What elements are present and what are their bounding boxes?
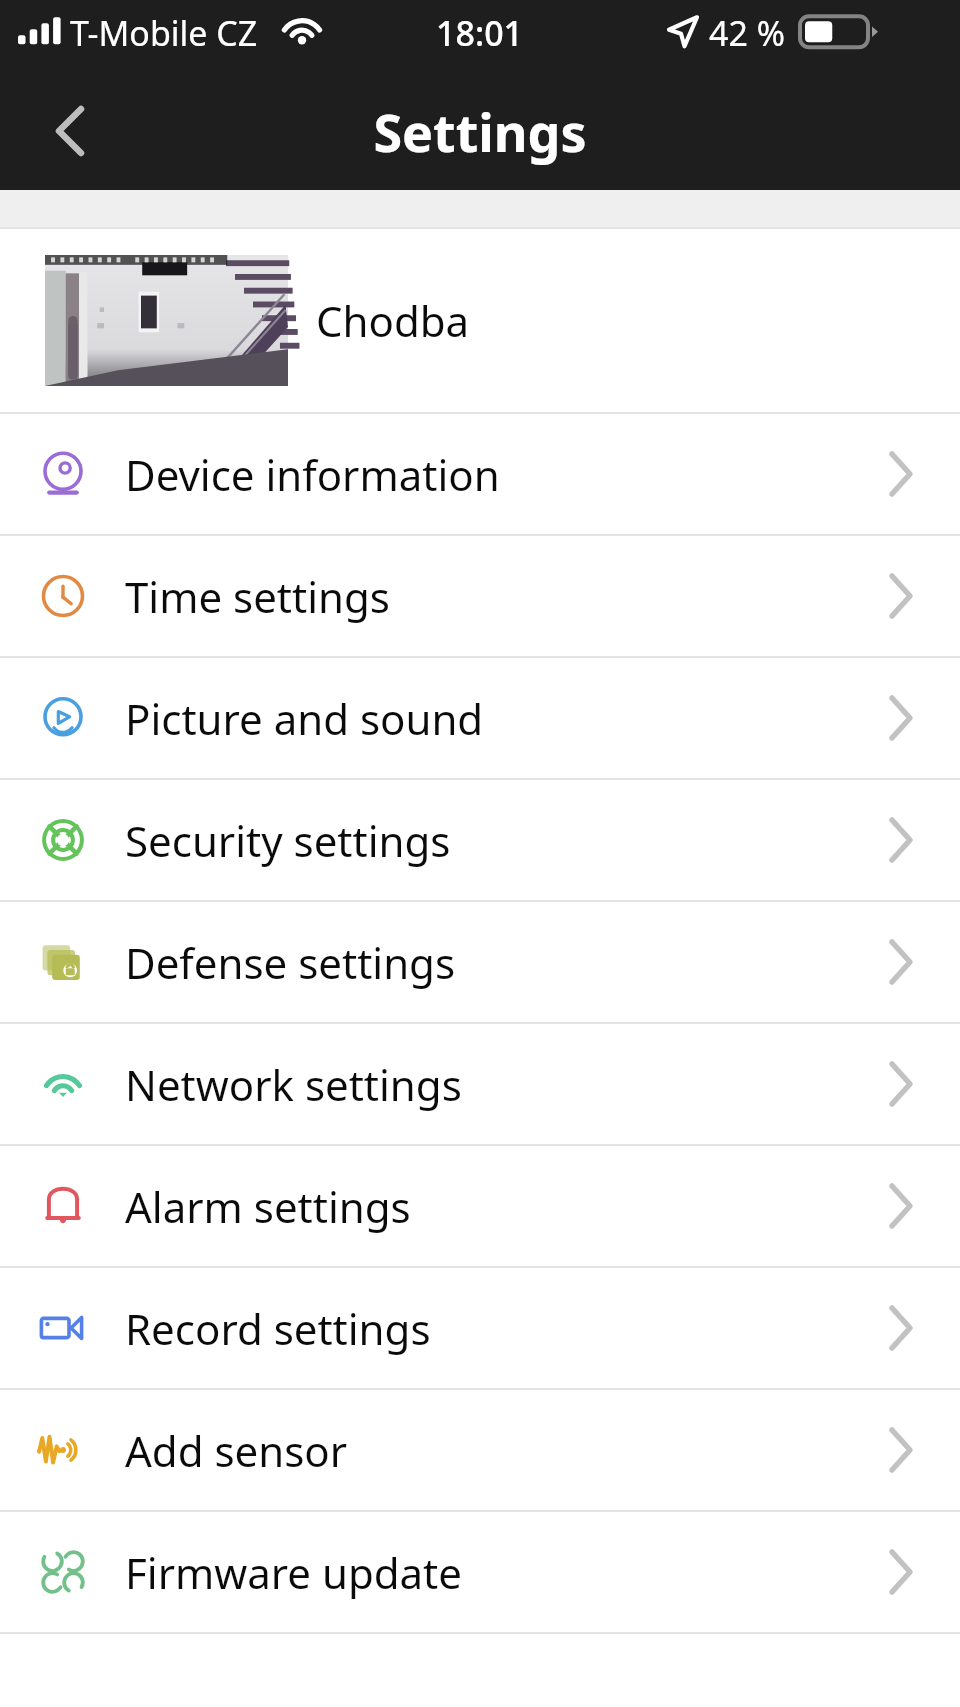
staticText: Device information: [125, 446, 840, 503]
button[interactable]: Alarm settings: [0, 1146, 960, 1266]
staticText: Settings: [373, 96, 587, 167]
staticText: Picture and sound: [125, 690, 840, 747]
button[interactable]: Network settings: [0, 1024, 960, 1144]
button[interactable]: Security settings: [0, 780, 960, 900]
staticText: Defense settings: [125, 934, 840, 991]
staticText: Alarm settings: [125, 1178, 840, 1235]
button[interactable]: Time settings: [0, 536, 960, 656]
button[interactable]: Picture and sound: [0, 658, 960, 778]
button[interactable]: Chodba: [0, 229, 960, 412]
staticText: Add sensor: [125, 1422, 840, 1479]
staticText: 18:01: [436, 10, 524, 56]
staticText: Security settings: [125, 812, 840, 869]
staticText: Chodba: [316, 292, 470, 349]
staticText: T-Mobile CZ: [70, 10, 258, 56]
staticText: Network settings: [125, 1056, 840, 1113]
staticText: Record settings: [125, 1300, 840, 1357]
button[interactable]: Firmware update: [0, 1512, 960, 1632]
button[interactable]: Add sensor: [0, 1390, 960, 1510]
button[interactable]: Defense settings: [0, 902, 960, 1022]
staticText: Time settings: [125, 568, 840, 625]
staticText: Firmware update: [125, 1544, 840, 1601]
staticText: 42 %: [709, 10, 785, 56]
button[interactable]: Back: [22, 83, 118, 179]
button[interactable]: Record settings: [0, 1268, 960, 1388]
button[interactable]: Device information: [0, 414, 960, 534]
